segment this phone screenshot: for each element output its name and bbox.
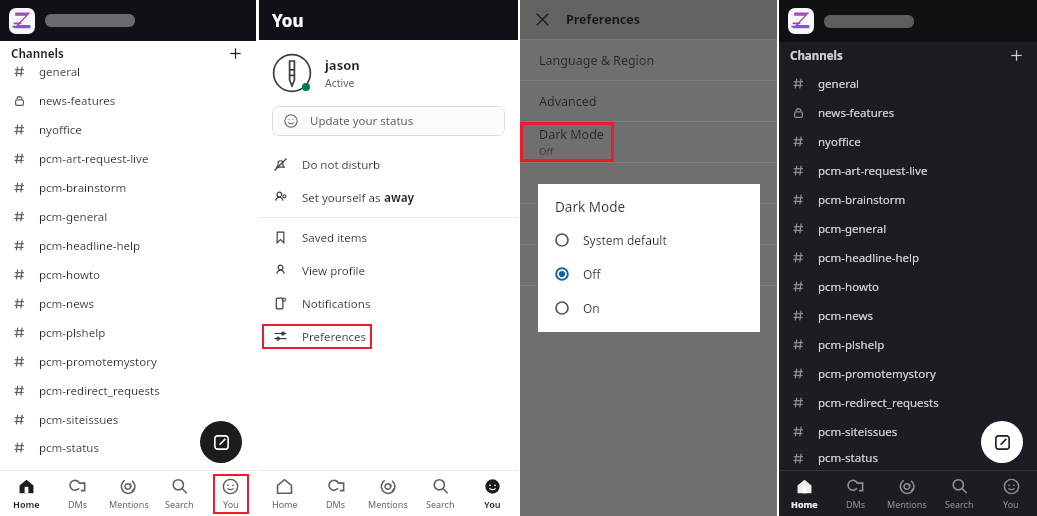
staticText: away	[384, 190, 415, 206]
button[interactable]: Mentions	[362, 471, 414, 516]
staticText: Language & Region	[539, 52, 655, 69]
button[interactable]: Search	[414, 471, 466, 516]
button[interactable]: Home	[0, 471, 52, 516]
staticText: pcm-status	[39, 440, 99, 456]
button[interactable]: pcm-redirect_requests	[779, 388, 1037, 417]
button[interactable]: pcm-status	[0, 434, 256, 461]
staticText: pcm-headline-help	[818, 250, 920, 266]
button[interactable]: DMs	[310, 471, 362, 516]
button[interactable]: Notifications	[259, 287, 518, 320]
button[interactable]: Off	[538, 262, 760, 285]
staticText: Set yourself as	[302, 190, 384, 206]
staticText: Dark Mode	[555, 198, 626, 216]
button[interactable]: Home	[779, 471, 830, 516]
button[interactable]: pcm-siteissues	[0, 405, 256, 434]
button[interactable]: Set yourself as	[259, 181, 518, 214]
staticText: news-features	[39, 93, 116, 109]
staticText: Home	[791, 498, 818, 510]
button[interactable]: general	[0, 66, 256, 86]
button[interactable]: Mentions	[103, 471, 154, 516]
button[interactable]: New message	[200, 421, 242, 463]
button[interactable]: You	[205, 471, 256, 516]
button[interactable]: pcm-art-request-live	[0, 144, 256, 173]
staticText: You	[223, 498, 239, 510]
staticText: pcm-general	[818, 221, 887, 237]
button[interactable]	[520, 204, 777, 244]
staticText: Notifications	[302, 296, 371, 312]
button[interactable]: pcm-howto	[0, 260, 256, 289]
button[interactable]: System default	[538, 228, 760, 251]
staticText: Preferences	[302, 329, 367, 345]
button[interactable]: nyoffice	[0, 115, 256, 144]
button[interactable]: pcm-brainstorm	[779, 185, 1037, 214]
button[interactable]: Do not disturb	[259, 148, 518, 181]
staticText: pcm-howto	[39, 267, 101, 283]
button[interactable]: Advanced	[520, 81, 777, 121]
button[interactable]: Update your status	[272, 106, 505, 136]
button[interactable]: DMs	[830, 471, 881, 516]
button[interactable]	[520, 163, 777, 203]
button[interactable]	[520, 245, 777, 285]
button[interactable]: pcm-promotemystory	[0, 347, 256, 376]
button[interactable]: Home	[259, 471, 310, 516]
staticText: DMs	[846, 498, 866, 510]
button[interactable]: New message	[981, 421, 1023, 463]
button[interactable]: Preferences	[259, 320, 518, 353]
staticText: Do not disturb	[302, 157, 381, 173]
button[interactable]: Search	[154, 471, 205, 516]
staticText: Dark Mode	[539, 126, 604, 143]
button[interactable]: pcm-brainstorm	[0, 173, 256, 202]
button[interactable]: jason	[259, 49, 518, 97]
button[interactable]: news-features	[0, 86, 256, 115]
button[interactable]: pcm-promotemystory	[779, 359, 1037, 388]
button[interactable]: general	[779, 69, 1037, 98]
button[interactable]: pcm-headline-help	[779, 243, 1037, 272]
button[interactable]: pcm-general	[0, 202, 256, 231]
button[interactable]: Search	[933, 471, 985, 516]
button[interactable]: pcm-plshelp	[0, 318, 256, 347]
button[interactable]: On	[538, 296, 760, 319]
button[interactable]: pcm-news	[0, 289, 256, 318]
button[interactable]: Mentions	[881, 471, 933, 516]
button[interactable]: pcm-redirect_requests	[0, 376, 256, 405]
staticText: news-features	[818, 105, 895, 121]
button[interactable]: Dark Mode setting	[520, 122, 614, 162]
button[interactable]: Language & Region	[520, 40, 777, 80]
button[interactable]: news-features	[779, 98, 1037, 127]
button[interactable]: View profile	[259, 254, 518, 287]
staticText: pcm-brainstorm	[818, 192, 906, 208]
button[interactable]: Add channel	[223, 41, 248, 66]
button[interactable]: pcm-plshelp	[779, 330, 1037, 359]
button[interactable]: pcm-siteissues	[779, 417, 1037, 446]
staticText: Mentions	[109, 498, 149, 510]
staticText: Search	[426, 498, 455, 510]
button[interactable]: pcm-general	[779, 214, 1037, 243]
button[interactable]: Saved items	[259, 221, 518, 254]
staticText: Home	[13, 498, 40, 510]
staticText: Mentions	[887, 498, 927, 510]
button[interactable]: pcm-news	[779, 301, 1037, 330]
button[interactable]: DMs	[52, 471, 103, 516]
button[interactable]: nyoffice	[779, 127, 1037, 156]
staticText: DMs	[326, 498, 346, 510]
staticText: nyoffice	[39, 122, 82, 138]
staticText: Saved items	[302, 230, 368, 246]
staticText: pcm-siteissues	[39, 412, 119, 428]
button[interactable]: pcm-status	[779, 446, 1037, 470]
button[interactable]: Close	[534, 11, 551, 28]
button[interactable]: Add channel	[1004, 43, 1029, 68]
button[interactable]: pcm-howto	[779, 272, 1037, 301]
staticText: pcm-promotemystory	[39, 354, 157, 370]
staticText: System default	[583, 232, 667, 248]
staticText: Advanced	[539, 93, 597, 110]
staticText: Mentions	[368, 498, 408, 510]
button[interactable]: pcm-art-request-live	[779, 156, 1037, 185]
button[interactable]: You	[985, 471, 1037, 516]
button[interactable]: pcm-headline-help	[0, 231, 256, 260]
staticText: Channels	[790, 48, 843, 64]
staticText: Update your status	[310, 113, 414, 129]
staticText: pcm-art-request-live	[39, 151, 149, 167]
button[interactable]: You	[466, 471, 518, 516]
staticText: Off	[539, 145, 553, 158]
staticText: pcm-plshelp	[818, 337, 885, 353]
